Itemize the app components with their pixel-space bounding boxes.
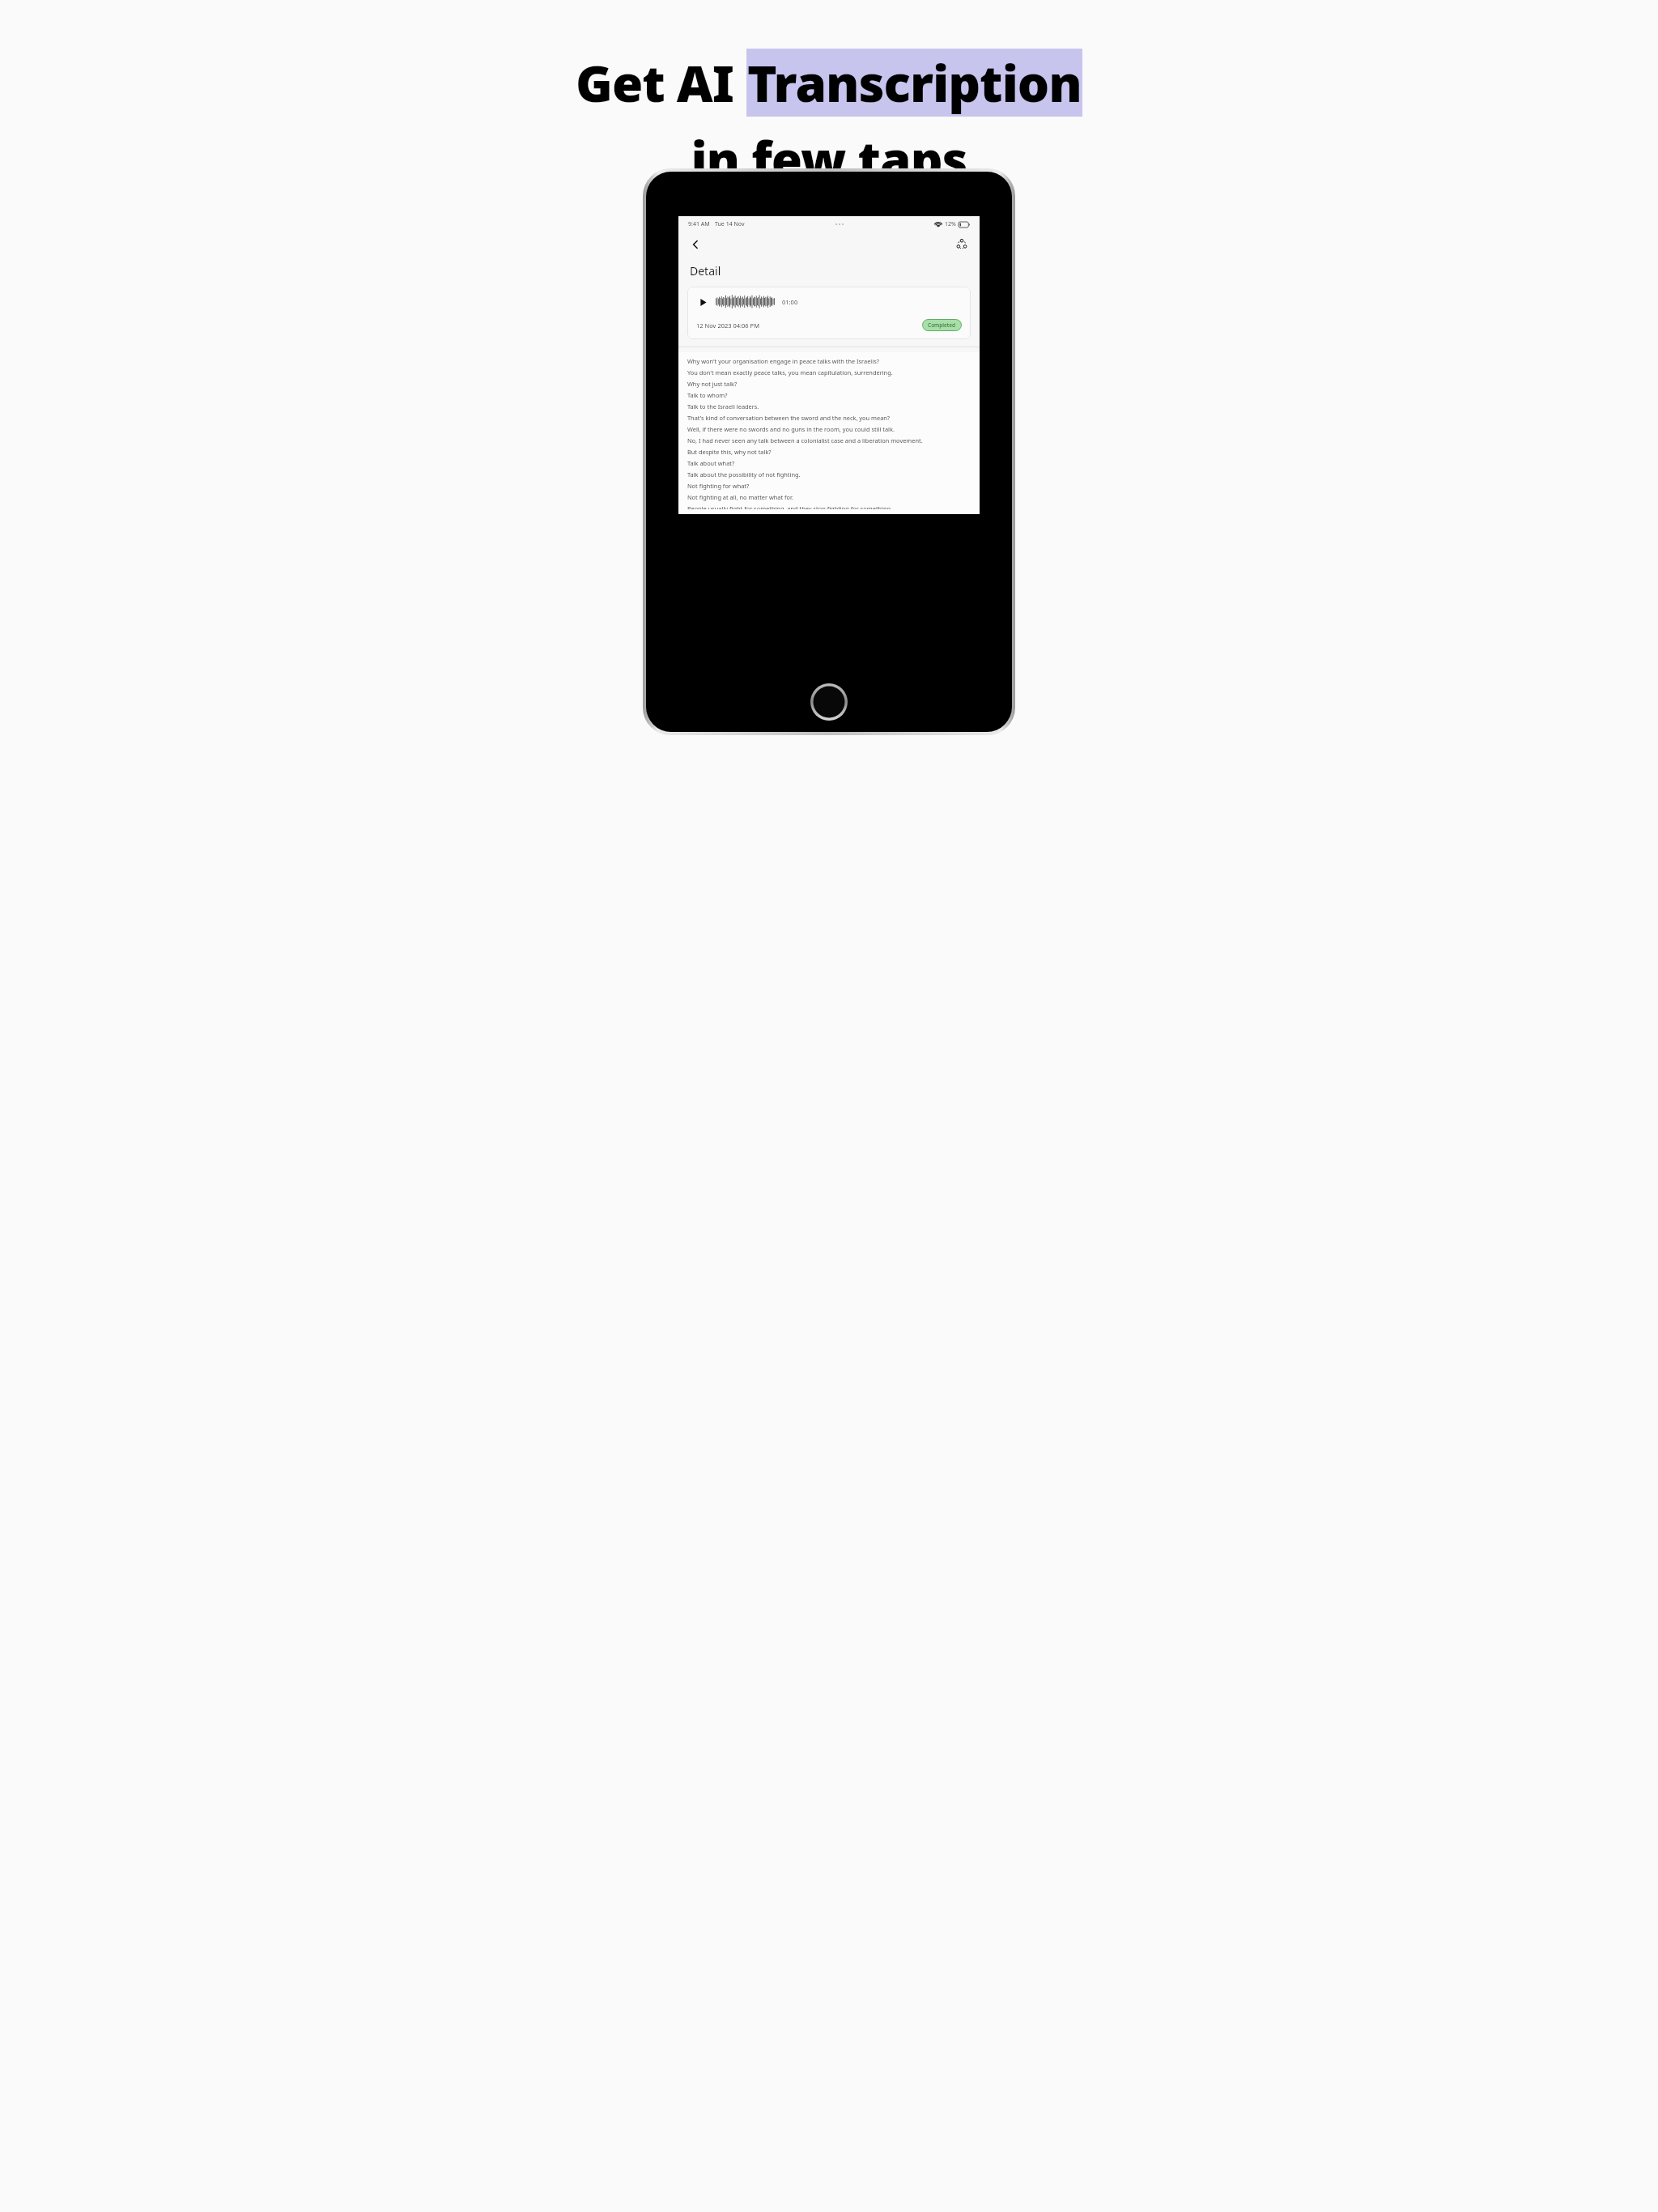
button[interactable]: Play bbox=[696, 296, 709, 308]
button[interactable]: Play bbox=[687, 287, 971, 339]
staticText: Completed bbox=[928, 321, 956, 329]
staticText: 12 Nov 2023 04:06 PM bbox=[696, 321, 759, 330]
staticText: Not fighting for what? bbox=[687, 482, 750, 490]
staticText: Transcription bbox=[747, 49, 1082, 117]
button[interactable]: Completed bbox=[922, 319, 962, 331]
staticText: People usually fight for something, and … bbox=[687, 504, 893, 509]
staticText: in few taps bbox=[0, 125, 1658, 193]
staticText: Why not just talk? bbox=[687, 380, 738, 388]
staticText: 12% bbox=[945, 220, 956, 228]
staticText: Talk to whom? bbox=[687, 391, 728, 399]
staticText: 9:41 AM bbox=[688, 220, 710, 228]
button[interactable]: Share bbox=[952, 235, 971, 254]
staticText: No, I had never seen any talk between a … bbox=[687, 436, 923, 445]
staticText: Talk to the Israeli leaders. bbox=[687, 402, 759, 410]
button[interactable]: Back bbox=[687, 236, 704, 253]
staticText: Detail bbox=[690, 263, 721, 279]
staticText: 01:00 bbox=[782, 298, 798, 306]
staticText: Tue 14 Nov bbox=[715, 220, 745, 228]
staticText: Talk about the possibility of not fighti… bbox=[687, 470, 801, 479]
staticText: But despite this, why not talk? bbox=[687, 448, 772, 456]
staticText: Talk about what? bbox=[687, 459, 735, 467]
staticText: Why won't your organisation engage in pe… bbox=[687, 357, 879, 365]
staticText: Well, if there were no swords and no gun… bbox=[687, 425, 895, 433]
staticText: Get AI bbox=[576, 49, 746, 117]
staticText: That's kind of conversation between the … bbox=[687, 414, 891, 422]
staticText: You don't mean exactly peace talks, you … bbox=[687, 368, 893, 376]
staticText: Not fighting at all, no matter what for. bbox=[687, 493, 793, 501]
